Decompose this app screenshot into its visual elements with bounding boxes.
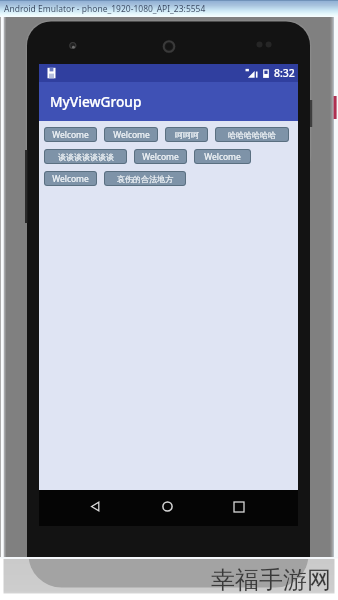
staticText: Welcome [113, 129, 150, 141]
button[interactable]: 哀伤的合法地方 [104, 171, 186, 186]
staticText: 哀伤的合法地方 [117, 174, 173, 184]
staticText: Welcome [142, 151, 179, 163]
staticText: Welcome [52, 129, 89, 141]
staticText: 呵呵呵 [175, 130, 199, 140]
button[interactable]: Welcome [104, 127, 158, 142]
button[interactable]: 呵呵呵 [165, 127, 208, 142]
staticText: 谈谈谈谈谈谈谈 [58, 152, 114, 162]
button[interactable]: 哈哈哈哈哈哈 [215, 127, 289, 142]
staticText: 8:32 [274, 66, 295, 80]
staticText: 哈哈哈哈哈哈 [228, 130, 276, 140]
staticText: Welcome [52, 173, 89, 185]
staticText: 幸福手游网 [211, 565, 331, 595]
button[interactable]: Home [161, 500, 174, 513]
button[interactable]: 谈谈谈谈谈谈谈 [44, 149, 127, 164]
button[interactable]: Welcome [194, 149, 251, 164]
staticText: Android Emulator - phone_1920-1080_API_2… [4, 3, 206, 15]
staticText: Welcome [204, 151, 241, 163]
button[interactable]: Welcome [44, 171, 97, 186]
button[interactable]: Recents [232, 500, 245, 513]
button[interactable]: Welcome [134, 149, 187, 164]
button[interactable]: Welcome [44, 127, 97, 142]
button[interactable]: Back [89, 500, 102, 513]
staticText: MyViewGroup [50, 92, 142, 111]
